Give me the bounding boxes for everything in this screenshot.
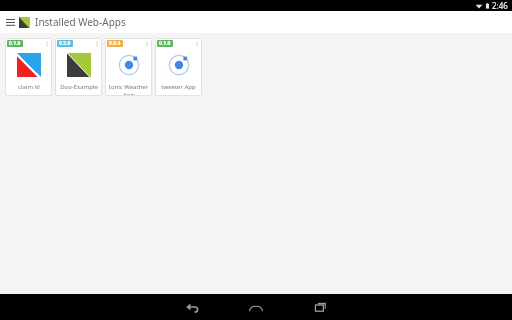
button[interactable]: More options for Doo-Example — [93, 40, 100, 47]
button[interactable]: Open navigation menu — [3, 15, 17, 29]
button[interactable]: Recent apps — [300, 294, 340, 320]
staticText: 0.5.0 — [59, 40, 71, 47]
button[interactable]: More options for tweeter App — [193, 40, 200, 47]
staticText: Doo-Example — [60, 83, 98, 91]
button[interactable]: Home — [236, 294, 276, 320]
staticText: tweeter App — [161, 83, 196, 91]
button[interactable]: More options for claim it! — [43, 40, 50, 47]
button[interactable]: Back — [172, 294, 212, 320]
button[interactable]: 0.5.0 — [55, 38, 102, 96]
staticText: 2:46 — [492, 0, 508, 11]
button[interactable]: 0.1.0 — [5, 38, 52, 96]
button[interactable]: 0.1.0 — [155, 38, 202, 96]
staticText: Ionic Weather App — [106, 83, 151, 96]
staticText: 0.1.0 — [159, 40, 171, 47]
staticText: claim it! — [18, 83, 40, 91]
button[interactable]: More options for Ionic Weather App — [143, 40, 150, 47]
staticText: 0.0.4 — [109, 40, 121, 47]
staticText: 0.1.0 — [9, 40, 21, 47]
staticText: Installed Web-Apps — [35, 15, 126, 29]
button[interactable]: 0.0.4 — [105, 38, 152, 96]
